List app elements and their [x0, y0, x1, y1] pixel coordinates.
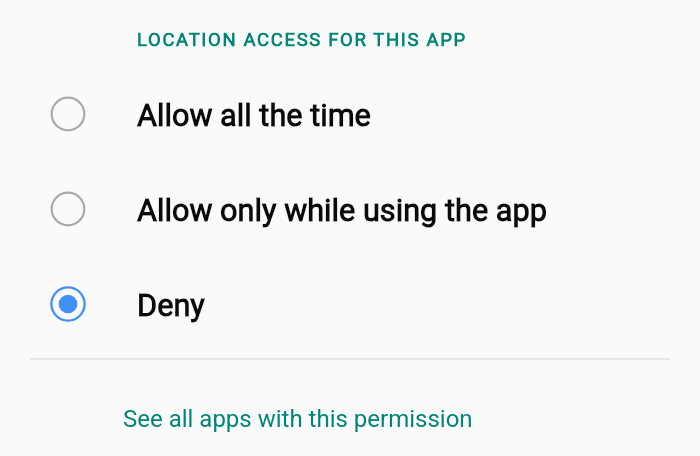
button[interactable]: Allow only while using the app [0, 161, 700, 256]
staticText: Allow only while using the app [137, 193, 547, 229]
button[interactable]: See all apps with this permission [0, 371, 700, 456]
staticText: LOCATION ACCESS FOR THIS APP [137, 29, 467, 51]
staticText: Allow all the time [137, 98, 371, 134]
button[interactable]: Allow all the time [0, 66, 700, 161]
button[interactable]: Deny [0, 256, 700, 351]
staticText: See all apps with this permission [123, 405, 473, 433]
staticText: Deny [137, 288, 205, 324]
